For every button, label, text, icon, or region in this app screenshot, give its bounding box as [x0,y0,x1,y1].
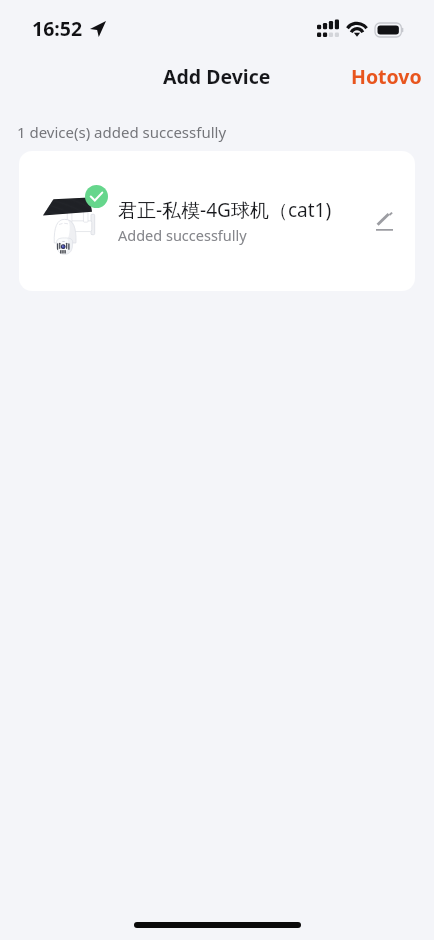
staticText: 16:52 [32,15,83,42]
staticText: Added successfully [118,225,247,245]
staticText: 君正-私模-4G球机（cat1) [118,197,332,223]
staticText: 1 device(s) added successfully [17,122,227,142]
staticText: Hotovo [351,63,422,90]
staticText: Add Device [163,63,271,90]
button[interactable]: 君正-私模-4G球机（cat1) [19,151,415,291]
button[interactable]: Hotovo [339,55,434,98]
button[interactable]: Rename device [362,199,406,243]
